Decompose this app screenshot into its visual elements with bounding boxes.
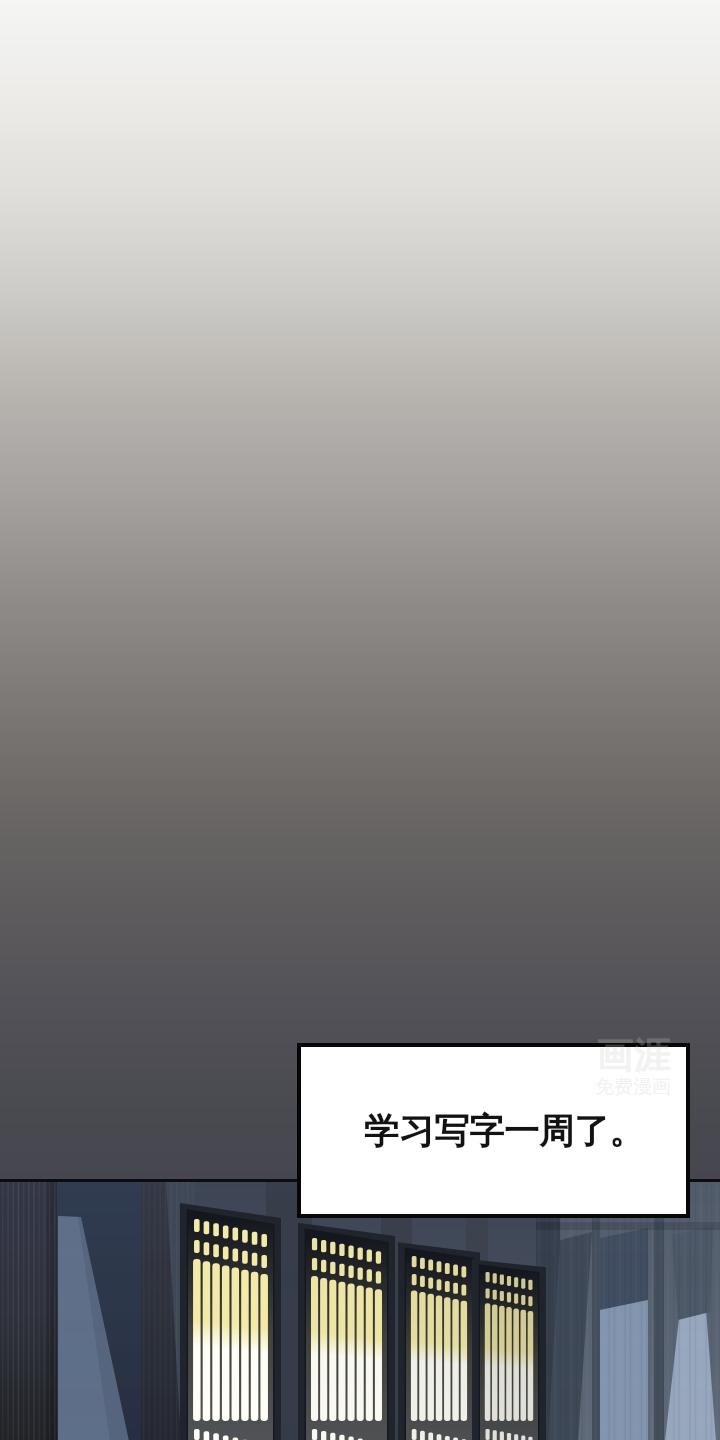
button[interactable]: 学习写字一周了。 — [301, 1047, 686, 1214]
staticText: 学习写字一周了。 — [364, 1109, 644, 1153]
staticText: 画涯 — [596, 1033, 670, 1078]
staticText: 免费漫画 — [595, 1075, 671, 1099]
